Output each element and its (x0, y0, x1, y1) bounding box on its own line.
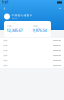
staticText: 2024-01-00 (53, 40, 61, 41)
staticText: 交易明细 (3, 40, 7, 41)
staticText: 交易明细 (3, 45, 7, 46)
staticText: 可用余额(元) (32, 25, 37, 27)
staticText: 9:41 (2, 1, 9, 4)
staticText: 交易明细 (3, 60, 7, 61)
staticText: 9,876.54 (32, 27, 46, 33)
staticText: 交易明细 (3, 65, 7, 66)
staticText: 12,345.67 (6, 27, 22, 33)
button[interactable]: Share (57, 5, 62, 10)
staticText: 账户余额(元) (6, 25, 11, 27)
staticText: 中国银行储蓄卡 (11, 14, 32, 17)
staticText: ‹ (3, 4, 5, 12)
staticText: 2024-01-04 (53, 60, 61, 61)
staticText: 交易明细 (3, 50, 7, 51)
staticText: 交易明细 (3, 55, 7, 56)
button[interactable]: Back (2, 5, 7, 10)
staticText: 2024-01-02 (53, 50, 61, 51)
staticText: 2024-01-05 (53, 65, 61, 66)
staticText: 2024-01-03 (53, 55, 61, 56)
staticText: 尾号 8888 (11, 17, 17, 19)
staticText: 2024-01-01 (53, 45, 61, 46)
staticText: ⌁ (58, 6, 60, 10)
